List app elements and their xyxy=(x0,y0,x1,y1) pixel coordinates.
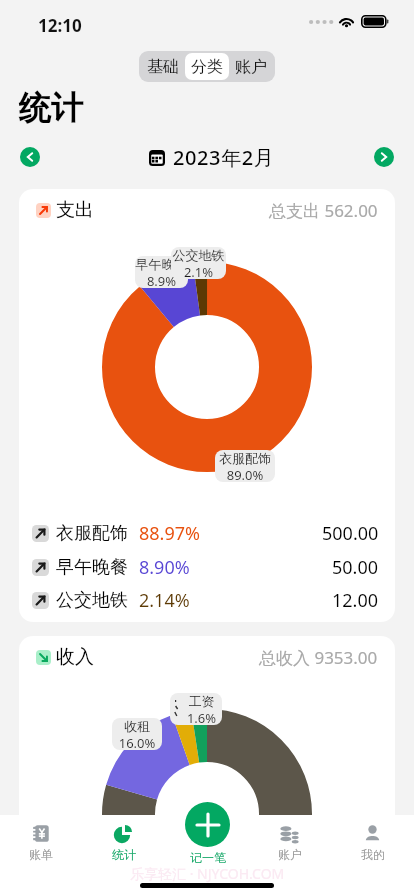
staticText: 早午晚餐 xyxy=(56,556,128,579)
staticText: 50.00 xyxy=(332,555,379,580)
button[interactable]: 早午晚餐 xyxy=(19,550,395,584)
button[interactable]: 衣服配饰 xyxy=(19,516,395,550)
staticText: 账户 xyxy=(278,847,302,862)
button[interactable]: 分类 xyxy=(185,53,229,80)
staticText: 2.14% xyxy=(139,588,190,613)
staticText: 12.00 xyxy=(332,588,379,613)
staticText: 收租 xyxy=(112,718,162,734)
button[interactable]: 账户 xyxy=(229,53,273,80)
staticText: 公交地铁 xyxy=(56,589,128,612)
staticText: 2.1% xyxy=(171,263,226,279)
staticText: 总支出 562.00 xyxy=(269,199,378,222)
staticText: 2023年2月 xyxy=(173,144,275,171)
staticText: 8.90% xyxy=(139,555,190,580)
button[interactable]: 账户 xyxy=(248,824,331,862)
staticText: 工资 xyxy=(181,693,222,709)
staticText: 公交地铁 xyxy=(171,247,226,263)
staticText: 500.00 xyxy=(322,521,379,546)
button[interactable]: 2023年2月 xyxy=(149,144,275,171)
staticText: 记一笔 xyxy=(190,850,226,865)
staticText: 乐享轻汇 · NJYCOH.COM xyxy=(130,864,285,883)
staticText: 统计 xyxy=(112,847,136,862)
button[interactable]: Previous month xyxy=(20,147,40,167)
button[interactable]: 统计 xyxy=(82,824,165,862)
staticText: 统计 xyxy=(19,88,83,128)
staticText: 支出 xyxy=(56,198,94,222)
button[interactable]: 账单 xyxy=(0,824,82,862)
button[interactable]: 我的 xyxy=(331,824,414,862)
staticText: 分类 xyxy=(191,57,223,77)
staticText: 12:10 xyxy=(38,14,82,37)
staticText: 账户 xyxy=(235,57,267,77)
button[interactable]: Next month xyxy=(374,147,394,167)
staticText: 89.0% xyxy=(215,466,275,482)
staticText: 88.97% xyxy=(139,521,200,546)
staticText: 账单 xyxy=(29,847,53,862)
button[interactable]: 公交地铁 xyxy=(19,583,395,617)
staticText: 衣服配饰 xyxy=(56,522,128,545)
staticText: 总收入 9353.00 xyxy=(259,646,378,669)
button[interactable]: 记一笔 xyxy=(185,802,230,865)
staticText: 衣服配饰 xyxy=(215,450,275,466)
staticText: 16.0% xyxy=(112,734,162,750)
staticText: 基础 xyxy=(147,57,179,77)
staticText: 早午晚餐 xyxy=(135,256,188,272)
staticText: 收入 xyxy=(56,645,94,669)
staticText: 8.9% xyxy=(135,272,188,288)
staticText: 1.6% xyxy=(181,709,222,725)
staticText: 我的 xyxy=(361,847,385,862)
button[interactable]: 基础 xyxy=(141,53,185,80)
